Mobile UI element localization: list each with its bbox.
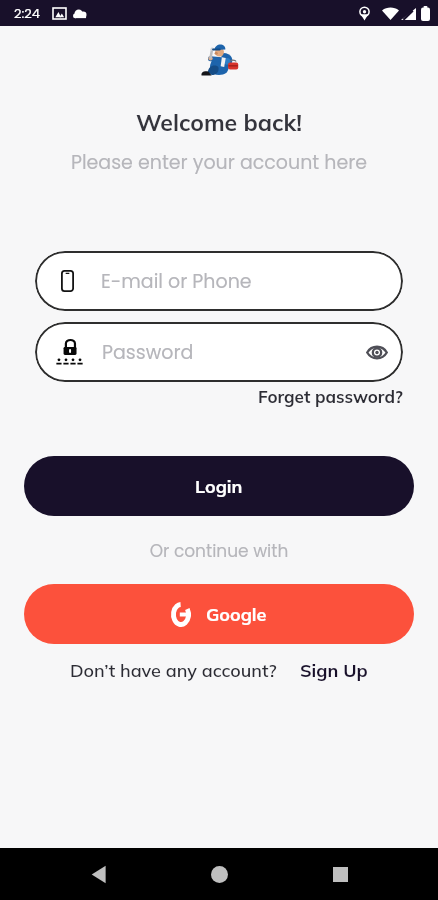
- button[interactable]: Back: [75, 851, 121, 897]
- staticText: Google: [206, 603, 267, 626]
- button[interactable]: Sign Up: [300, 659, 368, 682]
- button[interactable]: Recent apps: [317, 851, 363, 897]
- button[interactable]: Home: [196, 851, 242, 897]
- button[interactable]: Login: [24, 456, 414, 516]
- staticText: Login: [195, 475, 243, 498]
- staticText: Sign Up: [300, 659, 368, 682]
- staticText: Or continue with: [0, 539, 438, 563]
- button[interactable]: Show password: [362, 337, 392, 367]
- staticText: Welcome back!: [0, 108, 438, 137]
- button[interactable]: E-mail or Phone: [35, 251, 403, 311]
- staticText: Don’t have any account?: [70, 659, 277, 682]
- staticText: 2:24: [14, 4, 40, 22]
- button[interactable]: Google: [24, 584, 414, 644]
- staticText: Password: [102, 339, 362, 366]
- button[interactable]: Password: [35, 322, 403, 382]
- staticText: E-mail or Phone: [101, 268, 252, 295]
- staticText: Forget password?: [258, 386, 403, 407]
- staticText: Please enter your account here: [0, 149, 438, 176]
- button[interactable]: Forget password?: [258, 386, 403, 407]
